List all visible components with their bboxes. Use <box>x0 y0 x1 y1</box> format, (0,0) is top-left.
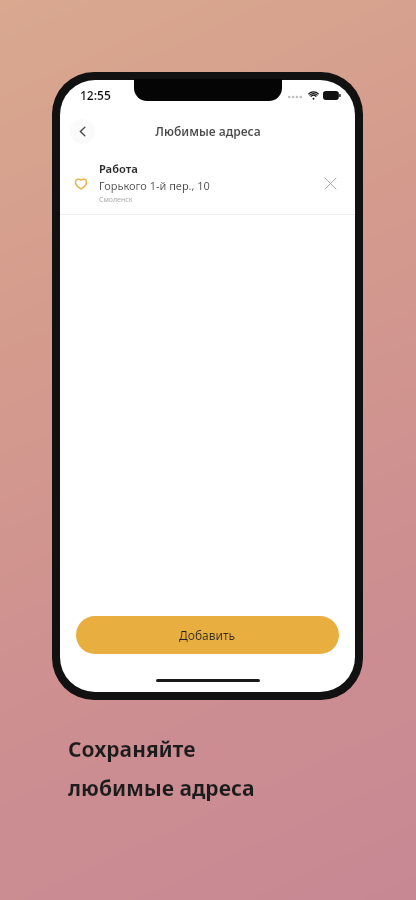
button[interactable]: Remove <box>317 170 343 196</box>
staticText: Любимые адреса <box>155 123 261 139</box>
staticText: Горького 1-й пер., 10 <box>99 178 210 193</box>
button[interactable]: Работа <box>60 152 355 214</box>
button[interactable]: Back <box>70 119 95 144</box>
staticText: Работа <box>99 161 138 176</box>
staticText: Добавить <box>179 627 236 643</box>
staticText: любимые адреса <box>68 774 255 803</box>
staticText: Сохраняйте <box>68 735 196 764</box>
button[interactable]: Добавить <box>76 616 339 654</box>
staticText: 12:55 <box>80 87 111 103</box>
staticText: Смоленск <box>99 195 133 205</box>
